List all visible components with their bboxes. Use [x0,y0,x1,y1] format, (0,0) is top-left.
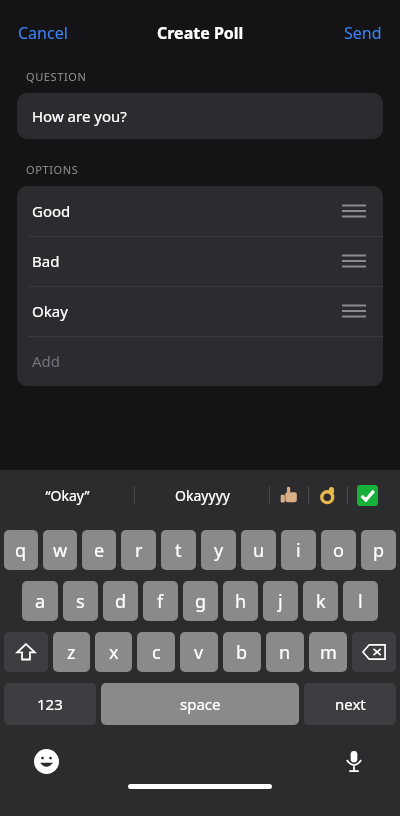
staticText: a [35,589,46,614]
staticText: 123 [37,694,63,714]
button[interactable]: “Okay” [0,478,134,512]
staticText: u [253,538,265,563]
button[interactable]: z [53,632,90,672]
button[interactable]: v [180,632,218,672]
staticText: OPTIONS [26,162,79,177]
button[interactable]: s [63,581,98,621]
staticText: n [279,640,291,665]
button[interactable]: Good [17,186,383,236]
button[interactable]: Send [334,16,392,50]
other: Reorder Good [342,202,366,220]
staticText: k [316,589,326,614]
button[interactable]: p [361,530,396,570]
staticText: o [333,538,344,563]
other: Reorder Okay [342,302,366,320]
button[interactable]: 123 [4,683,96,725]
button[interactable]: OK hand emoji [309,478,347,512]
button[interactable]: g [183,581,218,621]
button[interactable]: m [309,632,347,672]
button[interactable]: n [266,632,304,672]
button[interactable]: y [201,530,236,570]
staticText: l [358,589,363,614]
button[interactable]: How are you? [17,93,383,139]
button[interactable]: h [223,581,258,621]
staticText: d [115,589,127,614]
button[interactable]: d [103,581,138,621]
staticText: v [194,640,204,665]
staticText: Okay [32,301,68,321]
button[interactable]: k [303,581,338,621]
button[interactable]: x [95,632,132,672]
staticText: space [180,694,221,714]
button[interactable]: e [82,530,116,570]
staticText: h [235,589,247,614]
button[interactable]: j [263,581,298,621]
button[interactable]: Shift [4,632,48,672]
button[interactable]: Bad [17,236,383,286]
button[interactable]: c [137,632,175,672]
button[interactable]: o [321,530,356,570]
button[interactable]: a [22,581,58,621]
staticText: Add [32,351,61,371]
button[interactable]: Cancel [8,16,78,50]
button[interactable]: Okay [17,286,383,336]
staticText: “Okay” [45,486,90,505]
staticText: z [67,640,76,665]
staticText: y [214,538,224,563]
staticText: QUESTION [26,69,87,84]
button[interactable]: i [281,530,316,570]
button[interactable]: Thumbs up emoji [270,478,308,512]
staticText: g [195,589,207,614]
button[interactable]: b [223,632,261,672]
button[interactable]: w [43,530,77,570]
other: Reorder Bad [342,252,366,270]
staticText: i [296,538,301,563]
staticText: m [320,640,337,665]
staticText: next [335,694,366,714]
staticText: s [76,589,85,614]
staticText: Okayyyy [175,486,230,505]
button[interactable]: Okayyyy [135,478,269,512]
button[interactable]: Check mark emoji [348,478,386,512]
button[interactable]: Add [17,336,383,386]
button[interactable]: next [304,683,396,725]
staticText: e [94,538,105,563]
staticText: p [373,538,385,563]
button[interactable]: r [121,530,156,570]
staticText: q [15,538,27,563]
button[interactable]: q [4,530,38,570]
staticText: Good [32,201,71,221]
staticText: c [152,640,161,665]
staticText: r [135,538,143,563]
button[interactable]: f [143,581,178,621]
staticText: j [278,589,283,614]
button[interactable]: t [161,530,196,570]
button[interactable]: l [343,581,378,621]
staticText: b [236,640,248,665]
button[interactable]: u [241,530,276,570]
staticText: x [109,640,119,665]
button[interactable]: Voice input [336,743,372,779]
staticText: w [53,538,68,563]
staticText: Bad [32,251,60,271]
button[interactable]: Backspace [352,632,396,672]
button[interactable]: Emoji keyboard [28,743,64,779]
staticText: f [157,589,164,614]
staticText: Send [344,22,382,44]
staticText: Create Poll [157,22,244,44]
button[interactable]: space [101,683,299,725]
staticText: How are you? [32,106,127,126]
staticText: Cancel [18,22,68,44]
staticText: t [175,538,182,563]
